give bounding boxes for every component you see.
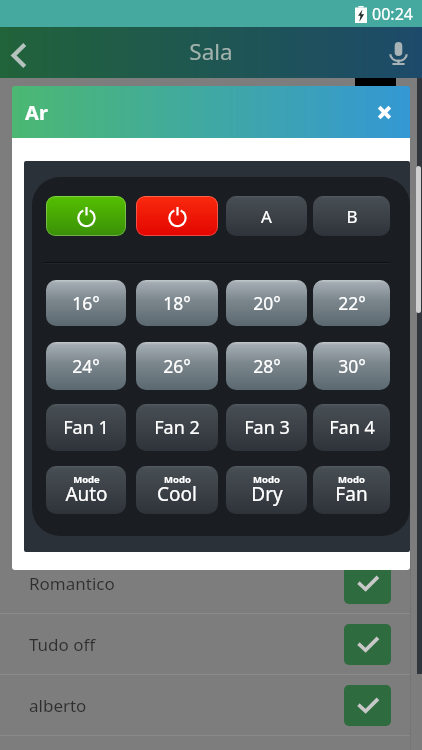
button[interactable]: Activate scene [344, 685, 391, 726]
button[interactable]: 30° [313, 342, 390, 390]
button[interactable]: Close [358, 86, 410, 138]
staticText: B [346, 205, 358, 228]
button[interactable]: 16° [46, 280, 126, 326]
button[interactable]: Fan 3 [226, 404, 307, 451]
button[interactable]: 20° [226, 280, 307, 326]
button[interactable]: Fan 4 [313, 404, 390, 451]
staticText: Modo [164, 473, 191, 486]
button[interactable]: alberto [0, 675, 410, 736]
staticText: 18° [163, 291, 191, 315]
button[interactable]: Romantico [0, 553, 410, 614]
button[interactable]: Modo [226, 466, 307, 514]
button[interactable]: Power on [46, 196, 126, 236]
staticText: Fan 1 [63, 415, 109, 440]
button[interactable]: 22° [313, 280, 390, 326]
staticText: Fan 2 [154, 415, 200, 440]
staticText: Mode [73, 473, 100, 486]
staticText: 28° [253, 354, 281, 378]
staticText: 22° [338, 291, 366, 315]
staticText: Sala [189, 36, 233, 67]
button[interactable]: Modo [313, 466, 390, 514]
staticText: 00:24 [372, 3, 413, 25]
staticText: Ar [25, 99, 48, 126]
staticText: Fan 3 [244, 415, 290, 440]
staticText: Modo [253, 473, 280, 486]
button[interactable]: B [313, 196, 390, 236]
button[interactable]: Activate scene [344, 563, 391, 604]
button[interactable]: Back [0, 27, 38, 78]
button[interactable]: Fan 1 [46, 404, 126, 451]
button[interactable]: Mode [46, 466, 126, 514]
button[interactable]: Fan 2 [136, 404, 218, 451]
staticText: 16° [72, 291, 100, 315]
staticText: A [261, 205, 272, 228]
button[interactable]: Power off [136, 196, 218, 236]
button[interactable]: 26° [136, 342, 218, 390]
button[interactable]: 24° [46, 342, 126, 390]
staticText: 24° [72, 354, 100, 378]
button[interactable]: Tudo off [0, 614, 410, 675]
button[interactable]: Modo [136, 466, 218, 514]
staticText: 30° [338, 354, 366, 378]
staticText: Romantico [29, 572, 115, 595]
staticText: Fan 4 [329, 415, 375, 440]
button[interactable]: 18° [136, 280, 218, 326]
button[interactable]: 28° [226, 342, 307, 390]
staticText: 20° [253, 291, 281, 315]
staticText: Dry [251, 481, 283, 507]
staticText: Fan [335, 481, 368, 507]
staticText: alberto [29, 694, 87, 717]
staticText: Cool [157, 481, 197, 507]
staticText: 26° [163, 354, 191, 378]
button[interactable]: Voice search [368, 27, 422, 78]
button[interactable]: Activate scene [344, 624, 391, 665]
button[interactable]: A [226, 196, 307, 236]
staticText: Auto [65, 481, 108, 507]
staticText: Tudo off [29, 633, 96, 656]
staticText: Modo [338, 473, 365, 486]
